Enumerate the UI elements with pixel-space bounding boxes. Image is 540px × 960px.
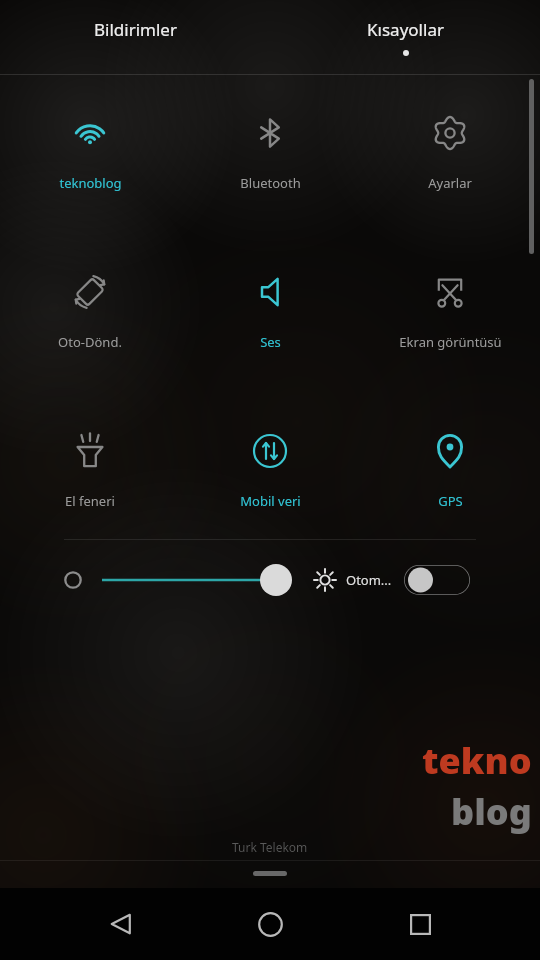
button[interactable]: Automatic brightness toggle [404, 565, 470, 595]
button[interactable]: Minimum brightness [58, 565, 88, 595]
staticText: Kısayollar [367, 18, 444, 41]
button[interactable]: Bluetooth [180, 113, 360, 192]
staticText: Turk Telekom [232, 839, 308, 855]
staticText: Ses [260, 333, 281, 351]
button[interactable]: Ses [180, 272, 360, 351]
button[interactable]: Auto brightness icon [310, 565, 340, 595]
staticText: Bildirimler [94, 18, 177, 41]
button[interactable]: Kısayollar [270, 0, 540, 74]
staticText: blog [451, 787, 532, 836]
button[interactable]: GPS [360, 431, 540, 510]
button[interactable]: Brightness [102, 560, 292, 600]
button[interactable]: Back [92, 895, 150, 953]
staticText: Oto-Dönd. [58, 333, 122, 351]
staticText: tekno [422, 736, 532, 785]
button[interactable]: Oto-Dönd. [0, 272, 180, 351]
staticText: Otom... [346, 571, 392, 589]
button[interactable]: Bildirimler [0, 0, 270, 74]
staticText: El feneri [65, 492, 115, 510]
button[interactable]: Home [241, 895, 299, 953]
staticText: Ekran görüntüsü [399, 333, 502, 351]
button[interactable]: Mobil veri [180, 431, 360, 510]
staticText: Bluetooth [240, 174, 301, 192]
staticText: Ayarlar [428, 174, 472, 192]
button[interactable]: Ayarlar [360, 113, 540, 192]
button[interactable]: Ekran görüntüsü [360, 272, 540, 351]
button[interactable]: teknoblog [0, 113, 180, 192]
staticText: Mobil veri [240, 492, 301, 510]
staticText: GPS [438, 492, 463, 510]
button[interactable]: El feneri [0, 431, 180, 510]
button[interactable]: Recent apps [391, 895, 449, 953]
staticText: teknoblog [59, 174, 122, 192]
